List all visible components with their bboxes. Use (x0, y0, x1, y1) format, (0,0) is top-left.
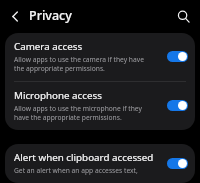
button[interactable]: Toggle on (167, 51, 188, 62)
button[interactable]: Toggle on (167, 158, 188, 169)
button[interactable]: Search (171, 4, 195, 28)
button[interactable]: Back (3, 4, 27, 28)
button[interactable]: Toggle on (167, 100, 188, 111)
button[interactable]: Alert when clipboard accessed (5, 144, 195, 183)
staticText: have the appropriate permissions. (14, 113, 122, 122)
staticText: Camera access (14, 40, 83, 53)
staticText: Allow apps to use the microphone if they (14, 104, 142, 113)
staticText: Get an alert when an app accesses text, (14, 166, 138, 175)
staticText: the appropriate permissions. (14, 64, 105, 73)
staticText: Privacy (29, 7, 72, 24)
staticText: Allow apps to use the camera if they hav… (14, 55, 144, 64)
button[interactable]: Microphone access (5, 82, 195, 130)
button[interactable]: Camera access (5, 33, 195, 81)
staticText: Microphone access (14, 89, 102, 102)
staticText: Alert when clipboard accessed (14, 151, 154, 164)
